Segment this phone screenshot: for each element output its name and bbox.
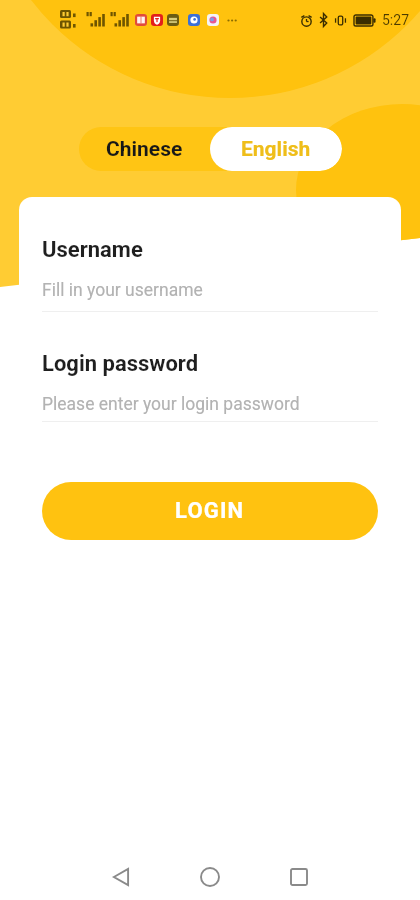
button[interactable]: Recent apps: [267, 845, 331, 900]
button[interactable]: Back: [89, 845, 153, 900]
staticText: Fill in your username: [42, 280, 203, 301]
button[interactable]: Chinese: [79, 127, 210, 171]
staticText: 5:27: [382, 12, 409, 28]
staticText: English: [241, 137, 311, 162]
button[interactable]: LOGIN: [42, 482, 378, 540]
button[interactable]: English: [210, 127, 342, 171]
staticText: LOGIN: [175, 498, 245, 524]
staticText: Username: [42, 237, 143, 263]
button[interactable]: Home: [178, 845, 242, 900]
staticText: Please enter your login password: [42, 394, 300, 415]
staticText: Login password: [42, 351, 199, 377]
staticText: Chinese: [106, 137, 183, 162]
